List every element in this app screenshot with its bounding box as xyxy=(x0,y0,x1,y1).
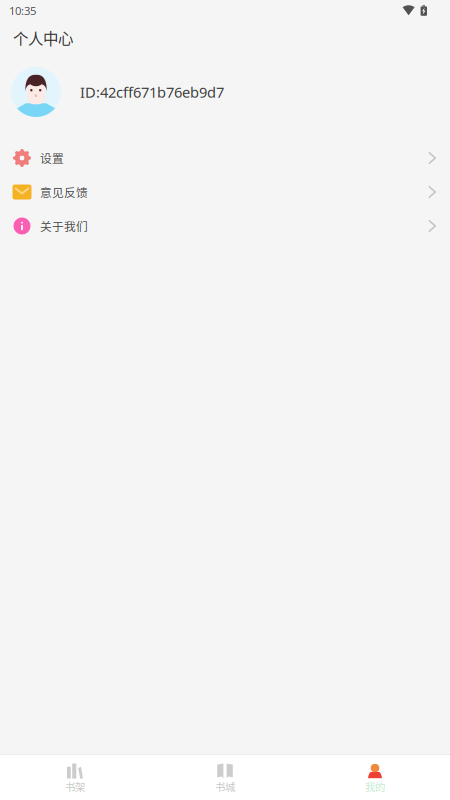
button[interactable]: 我的 xyxy=(300,754,450,800)
button[interactable]: 书架 xyxy=(0,754,150,800)
button[interactable]: 意见反馈 xyxy=(0,175,450,209)
staticText: 设置 xyxy=(40,149,64,166)
staticText: 10:35 xyxy=(9,3,36,18)
staticText: 意见反馈 xyxy=(40,183,88,200)
staticText: 书架 xyxy=(65,779,85,794)
staticText: 书城 xyxy=(215,779,235,794)
button[interactable]: 书城 xyxy=(150,754,300,800)
staticText: 个人中心 xyxy=(13,27,73,49)
staticText: ID:42cff671b76eb9d7 xyxy=(80,82,224,102)
staticText: 我的 xyxy=(365,779,385,794)
button[interactable]: 设置 xyxy=(0,141,450,175)
staticText: 关于我们 xyxy=(40,217,88,234)
button[interactable]: 关于我们 xyxy=(0,209,450,243)
